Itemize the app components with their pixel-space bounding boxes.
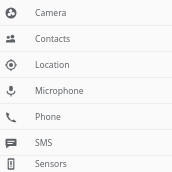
- button[interactable]: Location: [0, 52, 172, 77]
- staticText: Sensors: [35, 158, 67, 170]
- button[interactable]: Phone: [0, 104, 172, 129]
- staticText: Contacts: [35, 33, 71, 45]
- button[interactable]: Microphone: [0, 78, 172, 103]
- staticText: Camera: [35, 7, 67, 19]
- button[interactable]: SMS: [0, 130, 172, 155]
- staticText: Phone: [35, 111, 61, 123]
- button[interactable]: Camera: [0, 0, 172, 25]
- button[interactable]: Sensors: [0, 156, 172, 172]
- staticText: SMS: [35, 137, 53, 149]
- staticText: Microphone: [35, 85, 84, 97]
- staticText: Location: [35, 59, 70, 71]
- button[interactable]: Contacts: [0, 26, 172, 51]
